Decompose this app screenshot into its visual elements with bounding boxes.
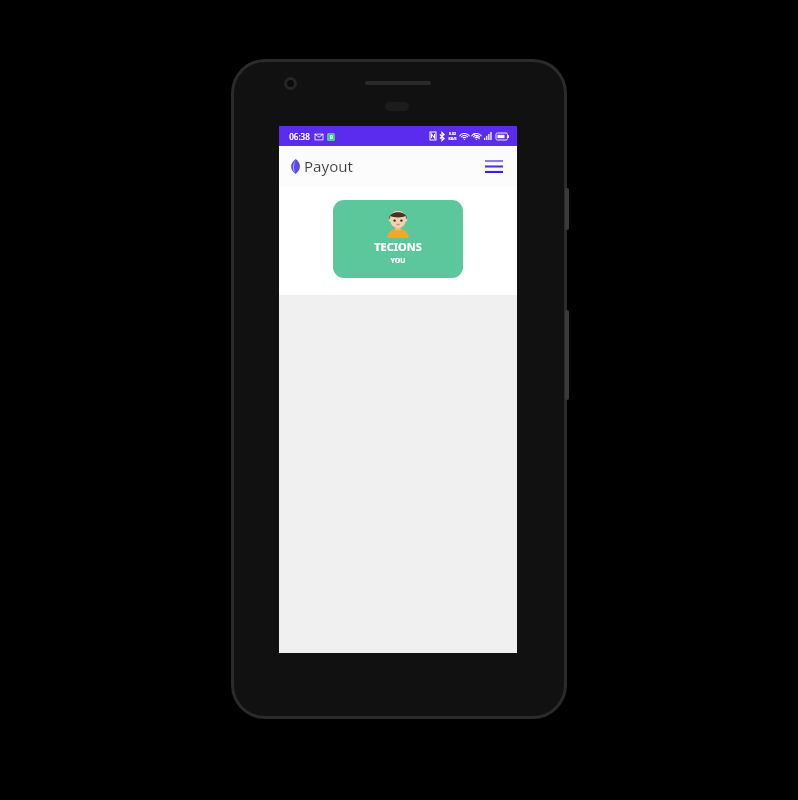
staticText: 0	[330, 134, 333, 141]
staticText: 0.02	[449, 131, 456, 136]
staticText: KB/S	[448, 136, 457, 141]
button[interactable]: Open navigation menu	[479, 151, 509, 181]
staticText: TECIONS	[374, 239, 422, 254]
staticText: YOU	[390, 256, 406, 266]
staticText: Payout	[304, 156, 353, 176]
button[interactable]: TECIONS	[333, 200, 463, 278]
staticText: 06:38	[289, 131, 310, 142]
